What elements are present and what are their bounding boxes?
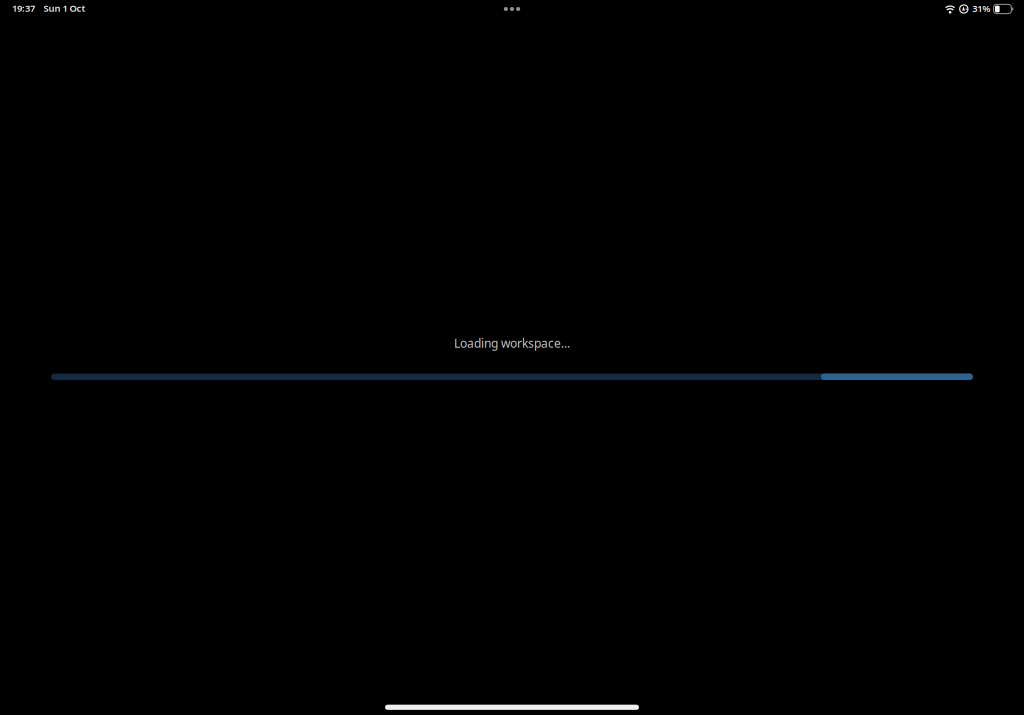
staticText: Sun 1 Oct [44,2,86,14]
staticText: 31% [972,2,990,15]
staticText: 19:37 [12,2,35,14]
button[interactable]: Multitasking Controls [489,0,535,17]
staticText: Loading workspace... [454,335,570,351]
